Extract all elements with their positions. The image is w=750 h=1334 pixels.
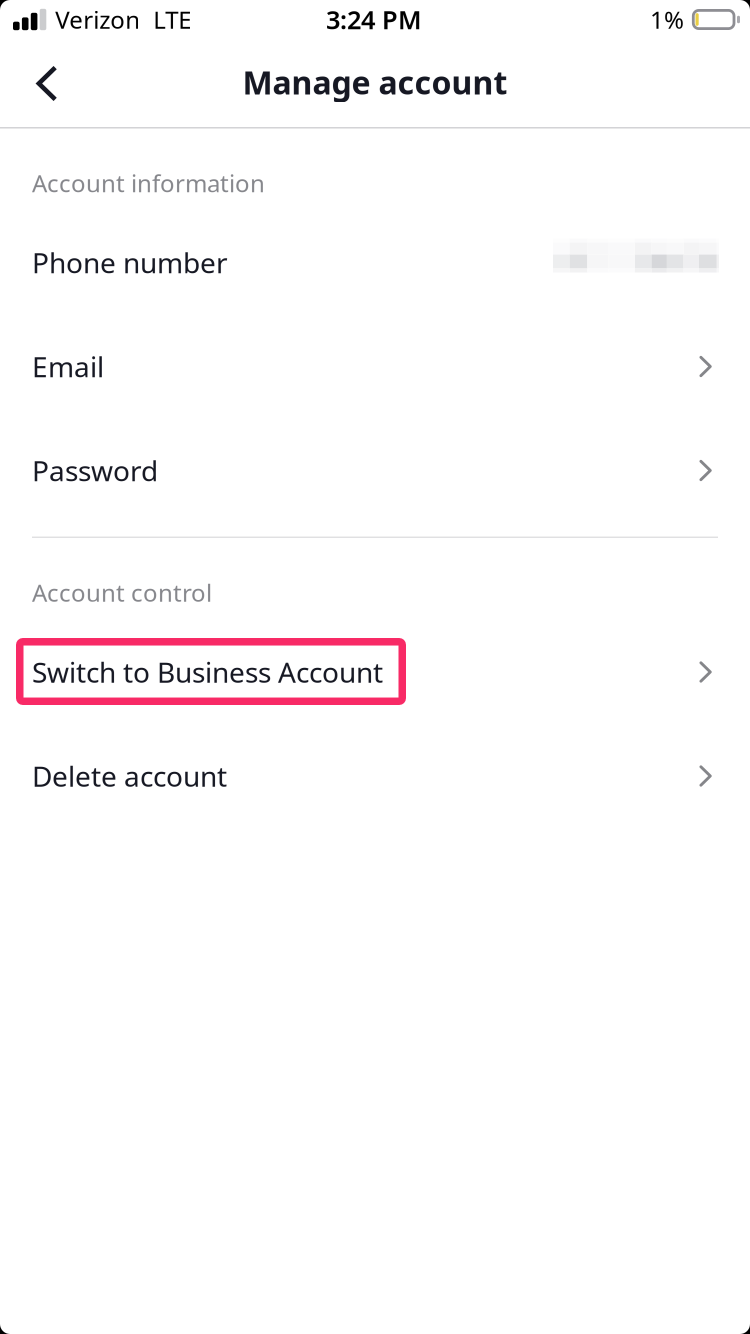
staticText: Account control (32, 576, 212, 608)
staticText: Phone number (32, 244, 228, 281)
staticText: Switch to Business Account (32, 653, 383, 691)
button[interactable]: Email (0, 314, 750, 418)
button[interactable]: Switch to Business Account (0, 620, 750, 724)
staticText: Delete account (32, 757, 227, 795)
staticText: Account information (32, 167, 265, 199)
staticText: Email (32, 348, 104, 385)
staticText: 1% (650, 4, 684, 35)
staticText: Password (32, 452, 158, 489)
staticText: Manage account (242, 61, 507, 103)
staticText: LTE (153, 4, 191, 35)
staticText: Verizon (55, 4, 140, 35)
staticText: 3:24 PM (326, 3, 422, 36)
button[interactable]: Phone number (0, 210, 750, 314)
button[interactable]: Delete account (0, 724, 750, 828)
button[interactable]: Password (0, 418, 750, 522)
button[interactable]: Back (0, 44, 91, 127)
